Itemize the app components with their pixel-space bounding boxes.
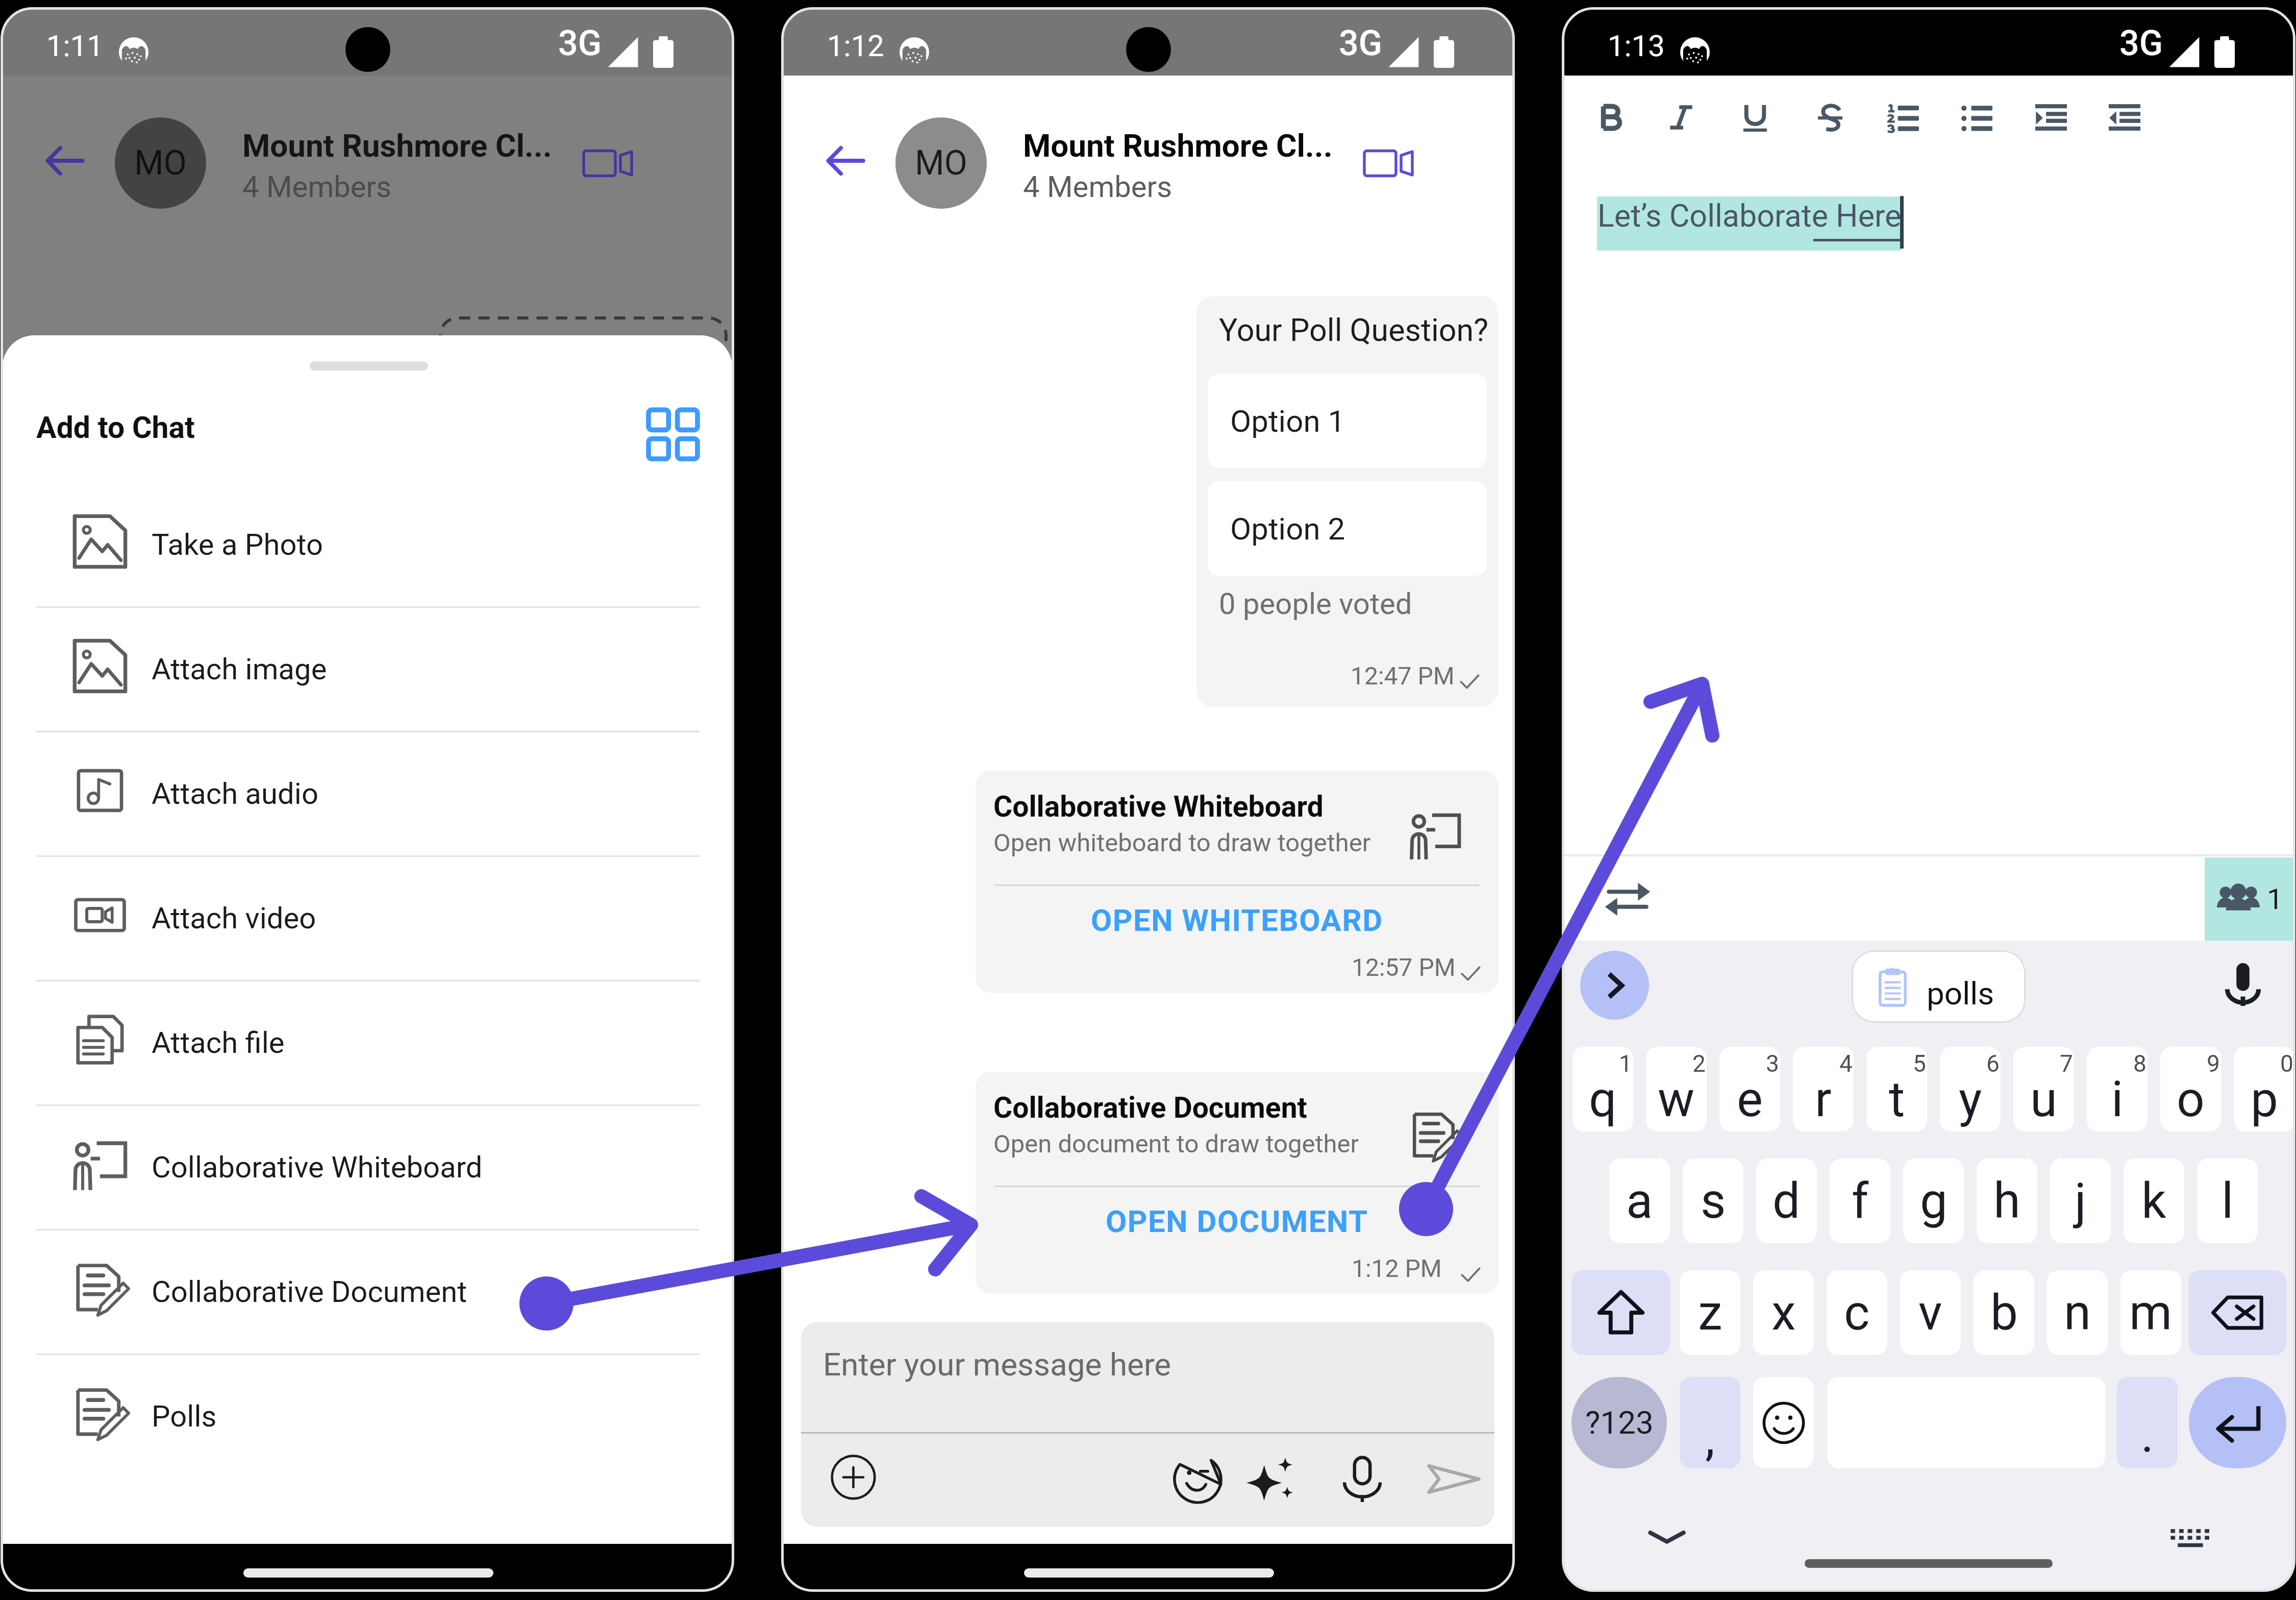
staticText: MO [134, 143, 187, 183]
button[interactable]: Attach file [3, 980, 732, 1104]
button[interactable]: OPEN WHITEBOARD [976, 892, 1499, 948]
button[interactable]: Collaborative Document [3, 1229, 732, 1353]
button[interactable]: Italic [1648, 84, 1715, 151]
staticText: Mount Rushmore Cl... [242, 127, 552, 164]
button[interactable]: q [1573, 1047, 1633, 1131]
button[interactable]: OPEN DOCUMENT [976, 1193, 1499, 1249]
staticText: z [1698, 1284, 1723, 1342]
button[interactable]: a [1609, 1159, 1670, 1243]
staticText: n [2064, 1284, 2091, 1342]
staticText: 3G [2119, 23, 2163, 64]
button[interactable]: w [1646, 1047, 1707, 1131]
staticText: 3 [1766, 1050, 1779, 1077]
button[interactable]: Voice input [2210, 951, 2276, 1018]
staticText: 12:57 PM [1352, 953, 1456, 981]
button[interactable]: Video call [557, 141, 608, 192]
button[interactable]: j [2050, 1159, 2111, 1243]
staticText: Attach video [152, 901, 316, 936]
button[interactable]: g [1903, 1159, 1964, 1243]
staticText: 5 [1913, 1050, 1926, 1077]
button[interactable]: f [1830, 1159, 1890, 1243]
staticText: 4 Members [1023, 169, 1172, 204]
button[interactable]: Grid view [635, 397, 711, 472]
button[interactable]: Emoji [1753, 1377, 1814, 1468]
button[interactable]: o [2160, 1047, 2221, 1131]
button[interactable]: y [1940, 1047, 2001, 1131]
staticText: . [2141, 1406, 2154, 1464]
button[interactable]: Attach image [3, 606, 732, 731]
staticText: f [1852, 1172, 1869, 1230]
staticText: Open document to draw together [993, 1129, 1359, 1159]
staticText: t [1889, 1071, 1905, 1128]
button[interactable]: t [1866, 1047, 1927, 1131]
button[interactable]: Sticker [1165, 1446, 1230, 1512]
button[interactable]: v [1900, 1270, 1961, 1355]
button[interactable]: s [1683, 1159, 1743, 1243]
staticText: Collaborative Document [993, 1091, 1307, 1125]
button[interactable]: Backspace [2189, 1270, 2286, 1355]
button[interactable]: Polls [3, 1353, 732, 1478]
button[interactable]: z [1680, 1270, 1740, 1355]
button[interactable]: Switch keyboard [2160, 1505, 2221, 1566]
button[interactable]: ?123 [1571, 1377, 1667, 1468]
button[interactable]: Numbered list [1869, 84, 1937, 151]
staticText: Your Poll Question? [1219, 312, 1489, 348]
button[interactable]: c [1827, 1270, 1887, 1355]
staticText: Collaborative Document [152, 1274, 467, 1309]
button[interactable]: Sync changes [1597, 869, 1658, 930]
button[interactable]: u [2013, 1047, 2074, 1131]
button[interactable]: Bulleted list [1943, 84, 2010, 151]
staticText: y [1959, 1071, 1982, 1128]
staticText: 12:47 PM [1351, 661, 1455, 690]
button[interactable]: AI assist [1237, 1446, 1303, 1512]
button[interactable]: Voice message [1330, 1446, 1395, 1512]
button[interactable]: k [2124, 1159, 2184, 1243]
button[interactable]: Take a Photo [3, 482, 732, 606]
button[interactable]: p [2234, 1047, 2293, 1131]
button[interactable]: m [2120, 1270, 2181, 1355]
button[interactable]: Bold [1576, 84, 1643, 151]
button[interactable]: Increase indent [2017, 84, 2085, 151]
staticText: Take a Photo [152, 527, 323, 562]
button[interactable]: x [1753, 1270, 1814, 1355]
staticText: l [2222, 1172, 2234, 1230]
button[interactable]: Strikethrough [1796, 84, 1864, 151]
button[interactable]: Attach audio [3, 731, 732, 855]
staticText: Enter your message here [823, 1346, 1171, 1383]
button[interactable]: b [1974, 1270, 2034, 1355]
button[interactable]: Video call [1338, 141, 1389, 192]
button[interactable]: Add attachment [822, 1446, 884, 1508]
button[interactable]: Enter [2189, 1377, 2286, 1468]
button[interactable]: Send [1421, 1446, 1486, 1512]
button[interactable]: . [2117, 1377, 2178, 1468]
button[interactable]: n [2047, 1270, 2108, 1355]
staticText: r [1815, 1071, 1832, 1128]
button[interactable]: polls [1852, 950, 2026, 1023]
button[interactable]: Back [34, 130, 95, 191]
button[interactable]: Collaborative Whiteboard [3, 1104, 732, 1229]
button[interactable]: e [1719, 1047, 1780, 1131]
button[interactable]: Option 2 [1208, 481, 1487, 576]
button[interactable]: Attach video [3, 855, 732, 980]
button[interactable]: d [1756, 1159, 1817, 1243]
staticText: 4 [1839, 1050, 1853, 1077]
button[interactable]: r [1793, 1047, 1854, 1131]
button[interactable]: Shift [1571, 1270, 1670, 1355]
staticText: ?123 [1585, 1404, 1654, 1441]
button[interactable]: i [2087, 1047, 2148, 1131]
staticText: polls [1927, 975, 1994, 1012]
button[interactable]: Option 1 [1208, 374, 1487, 468]
button[interactable]: , [1680, 1377, 1740, 1468]
button[interactable]: More suggestions [1580, 951, 1649, 1020]
button[interactable]: Underline [1721, 84, 1789, 151]
staticText: b [1990, 1284, 2018, 1342]
button[interactable]: Back [815, 130, 876, 191]
button[interactable]: h [1977, 1159, 2037, 1243]
button[interactable]: l [2197, 1159, 2258, 1243]
button[interactable]: Hide keyboard [1636, 1506, 1698, 1567]
staticText: 3G [1339, 23, 1382, 64]
button[interactable]: Decrease indent [2091, 84, 2158, 151]
staticText: s [1701, 1172, 1726, 1230]
button[interactable]: 1 [2205, 857, 2293, 941]
